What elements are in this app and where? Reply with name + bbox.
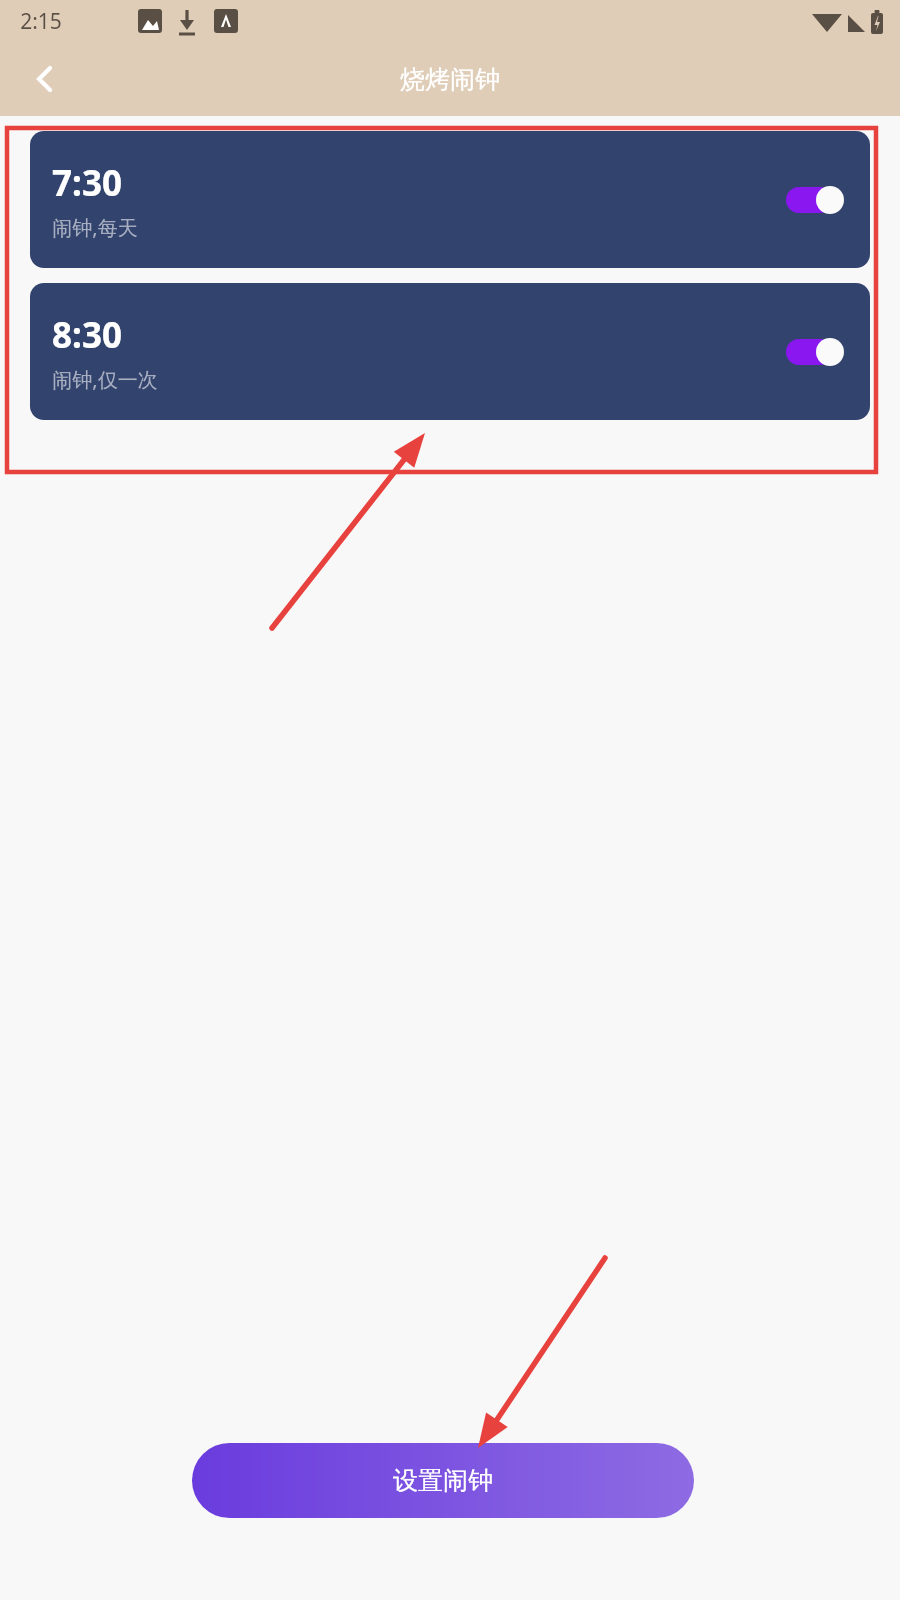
button[interactable]: Toggle alarm — [786, 332, 848, 372]
staticText: 2:15 — [20, 7, 62, 36]
staticText: 设置闹钟 — [393, 1465, 493, 1496]
button[interactable]: 8:30 — [30, 283, 870, 420]
button[interactable]: 设置闹钟 — [192, 1443, 694, 1518]
staticText: 8:30 — [52, 311, 122, 359]
staticText: 7:30 — [52, 159, 122, 207]
button[interactable]: Toggle alarm — [786, 180, 848, 220]
button[interactable]: Back — [12, 49, 72, 109]
staticText: 闹钟,仅一次 — [52, 366, 158, 393]
staticText: 烧烤闹钟 — [400, 64, 500, 95]
staticText: 闹钟,每天 — [52, 214, 138, 241]
button[interactable]: 7:30 — [30, 131, 870, 268]
